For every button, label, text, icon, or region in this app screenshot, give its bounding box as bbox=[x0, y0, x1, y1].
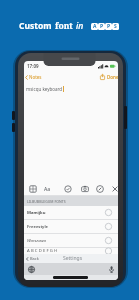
staticText: Notes bbox=[29, 74, 42, 80]
staticText: P bbox=[100, 23, 104, 30]
button[interactable] bbox=[100, 74, 105, 80]
button[interactable] bbox=[28, 266, 35, 273]
staticText: msicqu keyboard bbox=[26, 86, 63, 92]
button[interactable]: Back bbox=[26, 256, 39, 261]
button[interactable]: Warszawa bbox=[27, 234, 115, 247]
staticText: A bbox=[93, 23, 97, 30]
button[interactable] bbox=[81, 185, 89, 193]
staticText: Custom bbox=[19, 20, 52, 32]
button[interactable] bbox=[96, 185, 104, 193]
button[interactable]: ABCDEFGH bbox=[27, 248, 115, 254]
button[interactable]: Freeestyle bbox=[27, 220, 115, 233]
staticText: font bbox=[55, 20, 73, 32]
button[interactable]: Notes bbox=[25, 74, 42, 80]
button[interactable] bbox=[64, 185, 72, 193]
staticText: Freeestyle bbox=[27, 224, 49, 230]
button[interactable]: Done bbox=[107, 74, 118, 80]
staticText: Warszawa bbox=[27, 238, 47, 244]
button[interactable] bbox=[111, 185, 118, 193]
staticText: LILBUBBLEGUM FONTS bbox=[27, 199, 66, 204]
button[interactable]: Settings bbox=[63, 255, 83, 262]
button[interactable] bbox=[109, 266, 114, 273]
staticText: P bbox=[107, 23, 111, 30]
staticText: S bbox=[114, 23, 117, 30]
staticText: Mamijku bbox=[27, 210, 46, 216]
staticText: 17:09 bbox=[27, 63, 39, 69]
button[interactable]: Aa bbox=[44, 186, 51, 193]
button[interactable] bbox=[29, 185, 37, 193]
staticText: in bbox=[76, 20, 84, 32]
button[interactable]: Custom bbox=[19, 20, 119, 32]
button[interactable]: Mamijku bbox=[27, 206, 115, 219]
staticText: ABCDEFGH bbox=[27, 248, 59, 254]
staticText: Back bbox=[30, 256, 39, 261]
